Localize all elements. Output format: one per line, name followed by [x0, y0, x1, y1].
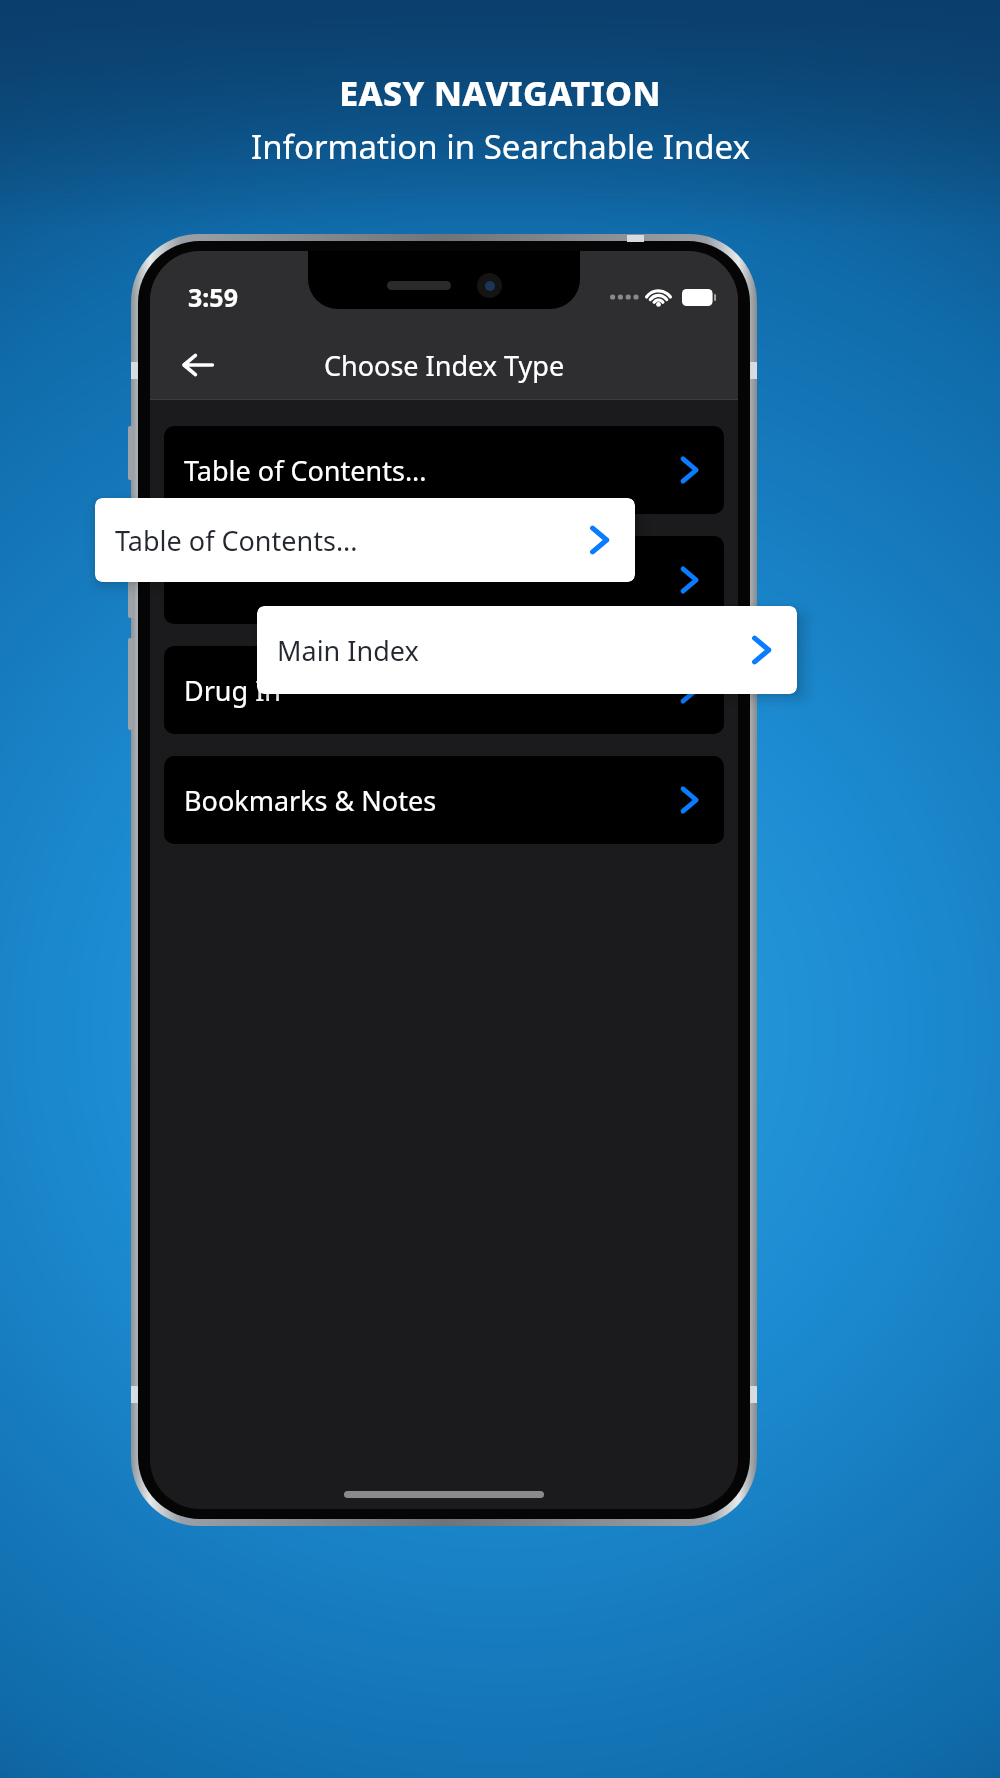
staticText: Choose Index Type [324, 347, 565, 384]
staticText: Information in Searchable Index [251, 124, 750, 169]
button[interactable]: Drug In [164, 646, 724, 734]
button[interactable] [164, 536, 724, 624]
staticText: EASY NAVIGATION [339, 70, 661, 116]
button[interactable]: Main Index [257, 606, 797, 694]
button[interactable]: Table of Contents... [164, 426, 724, 514]
button[interactable]: Table of Contents... [95, 498, 635, 582]
staticText [184, 562, 674, 599]
staticText: Drug In [184, 672, 674, 709]
button[interactable]: Bookmarks & Notes [164, 756, 724, 844]
staticText: Main Index [277, 632, 419, 669]
staticText: Bookmarks & Notes [184, 782, 674, 819]
staticText: Table of Contents... [184, 452, 674, 489]
staticText: Table of Contents... [115, 522, 358, 559]
staticText: 3:59 [188, 280, 238, 314]
button[interactable]: Back [172, 339, 224, 391]
